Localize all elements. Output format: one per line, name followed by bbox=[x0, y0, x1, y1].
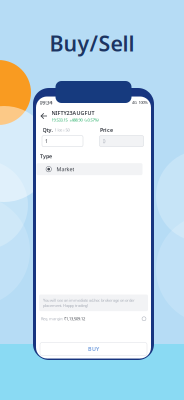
staticText: Market bbox=[56, 166, 74, 173]
staticText: 0 bbox=[102, 137, 105, 145]
staticText: Type bbox=[40, 153, 52, 160]
button[interactable]: Back bbox=[39, 111, 49, 121]
staticText: 19,533.15 +488.90 (+0.57%) bbox=[51, 117, 98, 123]
staticText: 1 lot = 50 bbox=[54, 127, 69, 133]
staticText: 100% bbox=[138, 100, 147, 105]
staticText: 1 bbox=[45, 137, 48, 145]
staticText: NIFTY23AUGFUT bbox=[51, 109, 94, 116]
staticText: BUY bbox=[88, 345, 99, 353]
staticText: Qty. bbox=[42, 126, 52, 134]
staticText: 09:34 bbox=[39, 99, 52, 106]
staticText: Price bbox=[100, 126, 113, 134]
staticText: Req. margin: bbox=[41, 316, 64, 321]
staticText: 4G bbox=[132, 100, 137, 105]
staticText: Buy/Sell bbox=[49, 29, 134, 57]
staticText: You will see an immediate ad-hoc brokera… bbox=[43, 297, 135, 308]
button[interactable]: Market bbox=[36, 163, 142, 175]
button[interactable]: BUY bbox=[40, 342, 147, 355]
staticText: ₹1,13,509.12 bbox=[64, 316, 85, 321]
